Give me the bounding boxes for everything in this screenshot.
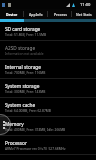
- staticText: Processor: [5, 140, 27, 146]
- staticText: Total: 64.00MB, Free: 62.87MB: [5, 109, 51, 113]
- button[interactable]: A2SD storage: [0, 41, 96, 60]
- staticText: SD card storage: [5, 26, 41, 32]
- staticText: Net Stats: [76, 12, 92, 17]
- button[interactable]: Processor: [0, 136, 96, 155]
- staticText: Total: 400MB, Free: 374MB, Idle: 266MB: [5, 128, 66, 132]
- button[interactable]: SD card storage: [0, 22, 96, 41]
- button[interactable]: Process: [48, 9, 72, 19]
- staticText: Total: 700MB, Free: 116MB: [5, 71, 46, 75]
- staticText: Process: [54, 12, 67, 17]
- staticText: Internal storage: [5, 64, 41, 70]
- button[interactable]: System storage: [0, 79, 96, 98]
- button[interactable]: System cache: [0, 98, 96, 117]
- staticText: Total: 300MB, Free: 143MB: [5, 90, 46, 94]
- staticText: 11:00: [80, 2, 91, 8]
- staticText: Information not available: [5, 52, 44, 56]
- staticText: Total: 51.86B, Free: 11.5MB: [5, 33, 47, 37]
- button[interactable]: Internal storage: [0, 60, 96, 79]
- button[interactable]: AppInfo: [24, 9, 48, 19]
- button[interactable]: Net Stats: [72, 9, 96, 19]
- staticText: System cache: [5, 102, 36, 108]
- button[interactable]: Floating menu: [0, 114, 11, 135]
- button[interactable]: Device: [0, 9, 24, 19]
- staticText: A2SD storage: [5, 45, 36, 51]
- staticText: AppInfo: [29, 12, 43, 17]
- staticText: Device: [6, 12, 18, 17]
- staticText: Memory: [5, 121, 24, 127]
- staticText: System storage: [5, 83, 40, 89]
- staticText: ARMv7 Processor rev 0 (v7l) 527.68MHz: [5, 147, 66, 151]
- button[interactable]: Memory: [0, 117, 96, 136]
